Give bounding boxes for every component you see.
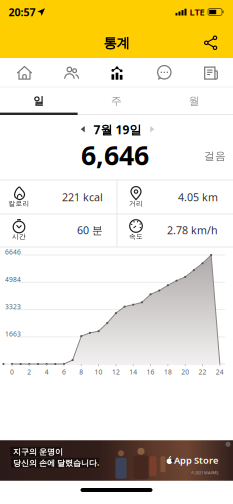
staticText: 1663 [5, 329, 21, 338]
staticText: 4.05 km [178, 190, 218, 204]
button[interactable]: 통계 [94, 58, 140, 88]
staticText: App Store [174, 454, 218, 466]
staticText: 시간 [12, 232, 26, 241]
button[interactable]: 다음 날짜 [143, 120, 161, 138]
button[interactable]: 채팅 [141, 58, 187, 88]
button[interactable]: 일 [0, 88, 78, 114]
staticText: 월 [189, 94, 200, 107]
staticText: LTE [189, 6, 204, 18]
staticText: 0 [10, 368, 14, 376]
staticText: 걸음 [204, 149, 226, 162]
staticText: 칼로리 [8, 199, 29, 208]
staticText: 8 [79, 368, 83, 376]
staticText: 주 [111, 94, 122, 107]
staticText: 당신의 손에 달렸습니다. [13, 457, 99, 468]
staticText: 2 [27, 368, 31, 376]
button[interactable]: 공유 [203, 35, 219, 51]
staticText: 4 [45, 368, 49, 376]
staticText: 10 [95, 368, 103, 376]
staticText: 16 [147, 368, 155, 376]
staticText: 7월 19일 [93, 121, 141, 137]
button[interactable]: 주 [78, 88, 155, 114]
staticText: 거리 [129, 199, 143, 208]
button[interactable]: 월 [155, 88, 233, 114]
staticText: 3323 [5, 302, 21, 311]
staticText: 6646 [5, 248, 21, 256]
staticText: 18 [164, 368, 172, 376]
button[interactable]: 홈 [1, 58, 47, 88]
staticText: 6,646 [81, 137, 149, 173]
staticText: 4984 [5, 275, 21, 284]
staticText: 속도 [129, 232, 143, 241]
staticText: 24 [216, 368, 224, 376]
staticText: 20:57 [8, 5, 35, 19]
staticText: 221 kcal [62, 190, 103, 204]
staticText: 12 [112, 368, 120, 376]
staticText: 통계 [103, 35, 129, 51]
button[interactable]: 이전 날짜 [74, 120, 92, 138]
button[interactable]: 뉴스 [188, 58, 233, 88]
staticText: 60 분 [77, 223, 103, 237]
button[interactable]: 친구 [48, 58, 94, 88]
button[interactable]: 광고 [0, 440, 233, 481]
staticText: © 2021 MARVEL [191, 470, 219, 475]
staticText: 2.78 km/h [167, 223, 218, 237]
staticText: 6 [62, 368, 66, 376]
staticText: 14 [129, 368, 137, 376]
staticText: 지구의 운명이 [13, 447, 63, 457]
staticText: 22 [198, 368, 206, 376]
staticText: 20 [181, 368, 189, 376]
staticText: 일 [33, 94, 44, 107]
